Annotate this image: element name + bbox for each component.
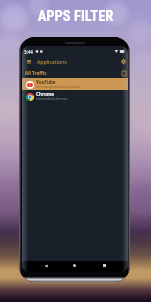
button[interactable]: Settings <box>118 55 128 68</box>
button[interactable]: Back <box>40 260 51 271</box>
staticText: 3:44 <box>24 49 33 54</box>
staticText: com.google.android.youtube <box>36 85 80 89</box>
button[interactable]: Chrome <box>22 90 128 102</box>
staticText: com.android.chrome <box>36 97 68 101</box>
staticText: Chrome <box>36 91 54 97</box>
button[interactable]: Menu <box>24 55 34 68</box>
staticText: YouTube <box>36 79 56 85</box>
staticText: Applications <box>37 58 67 65</box>
button[interactable]: YouTube <box>22 78 128 90</box>
button[interactable]: Home <box>69 260 80 271</box>
button[interactable]: Layout <box>119 68 128 78</box>
button[interactable]: Recents <box>99 260 110 271</box>
staticText: All Traffic <box>25 70 47 76</box>
staticText: APPS FILTER <box>0 8 151 25</box>
